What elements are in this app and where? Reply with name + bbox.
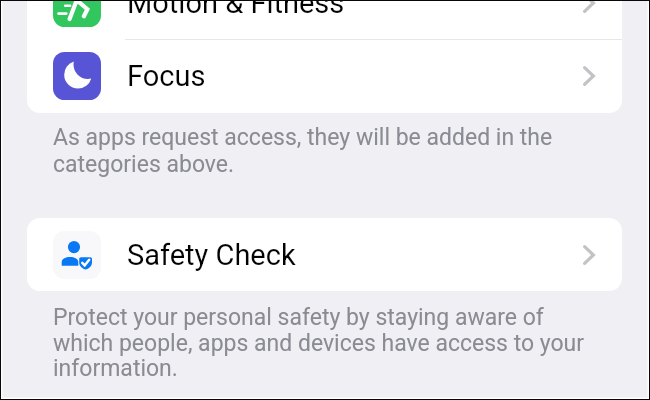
staticText: As apps request access, they will be add… xyxy=(53,124,593,177)
button[interactable]: Focus xyxy=(27,39,622,112)
staticText: Motion & Fitness xyxy=(127,0,345,20)
staticText: Focus xyxy=(127,59,206,93)
staticText: Protect your personal safety by staying … xyxy=(53,304,593,381)
button[interactable]: Safety Check xyxy=(27,218,622,291)
button[interactable]: Motion & Fitness xyxy=(27,0,622,39)
staticText: Safety Check xyxy=(127,238,296,272)
